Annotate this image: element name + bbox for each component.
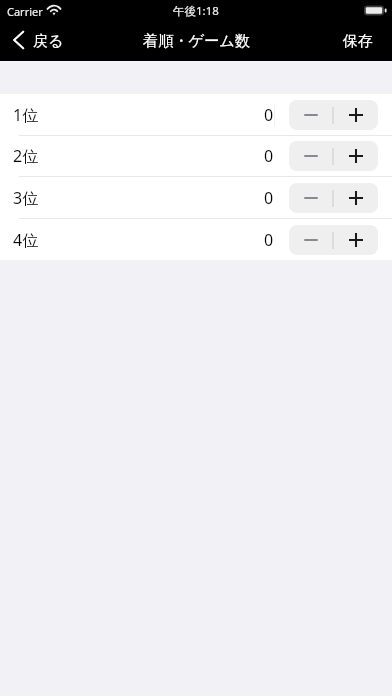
button[interactable]: Increase [334, 141, 378, 171]
staticText: 1位 [13, 104, 39, 126]
button[interactable]: Decrease [289, 225, 332, 255]
button[interactable]: Decrease [289, 100, 332, 130]
staticText: 午後1:18 [173, 3, 219, 19]
button[interactable]: Back [0, 28, 74, 55]
staticText: 0 [264, 187, 274, 209]
staticText: 戻る [33, 32, 64, 51]
button[interactable]: Increase [334, 100, 378, 130]
button[interactable]: 3位 [0, 177, 392, 218]
button[interactable]: 2位 [0, 136, 392, 176]
button[interactable]: Increase [334, 225, 378, 255]
button[interactable]: 保存 [329, 28, 392, 55]
staticText: 0 [264, 145, 274, 167]
staticText: 0 [264, 104, 274, 126]
staticText: 3位 [13, 187, 39, 209]
staticText: 4位 [13, 229, 39, 251]
staticText: 2位 [13, 145, 39, 167]
button[interactable]: Increase [334, 183, 378, 213]
button[interactable]: Decrease [289, 141, 332, 171]
staticText: 着順・ゲーム数 [143, 31, 251, 50]
staticText: 保存 [343, 32, 373, 51]
button[interactable]: 4位 [0, 219, 392, 260]
staticText: 0 [264, 229, 274, 251]
staticText: Carrier [7, 4, 43, 19]
button[interactable]: Decrease [289, 183, 332, 213]
button[interactable]: 1位 [0, 94, 392, 135]
other: Back [13, 31, 24, 49]
